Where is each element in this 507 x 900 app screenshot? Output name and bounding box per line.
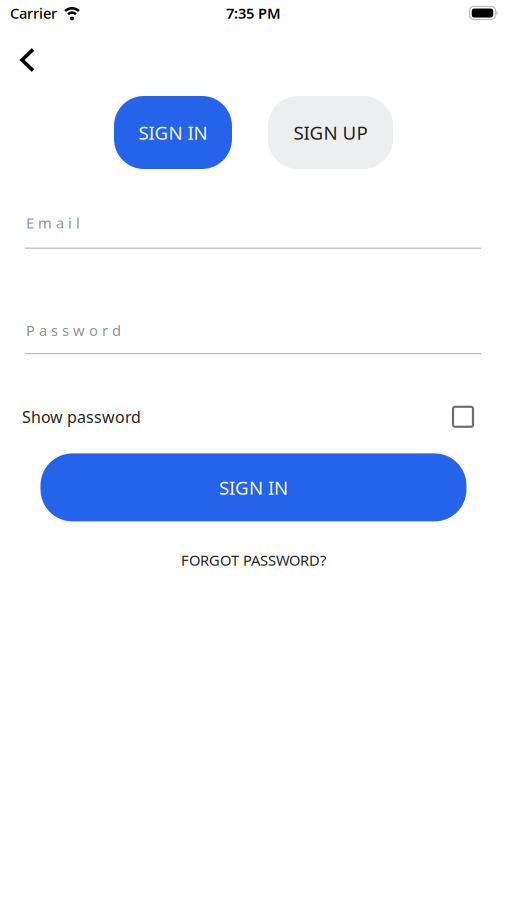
staticText: SIGN IN (219, 475, 288, 500)
button[interactable]: Show password (453, 407, 473, 427)
button[interactable]: SIGN IN (40, 453, 466, 521)
button[interactable]: SIGN IN (114, 96, 232, 169)
button[interactable]: Back (20, 48, 35, 72)
staticText: P a s s w o r d (26, 321, 121, 340)
button[interactable]: Email (0, 169, 507, 249)
staticText: FORGOT PASSWORD? (181, 550, 326, 570)
staticText: E m a i l (26, 213, 80, 232)
staticText: 7:35 PM (226, 3, 281, 23)
staticText: SIGN IN (138, 120, 207, 145)
button[interactable]: Password (0, 249, 507, 354)
staticText: Show password (22, 406, 141, 427)
button[interactable]: FORGOT PASSWORD? (181, 550, 326, 570)
staticText: SIGN UP (293, 120, 367, 145)
staticText: Carrier (10, 3, 57, 23)
button[interactable]: SIGN UP (268, 96, 393, 169)
